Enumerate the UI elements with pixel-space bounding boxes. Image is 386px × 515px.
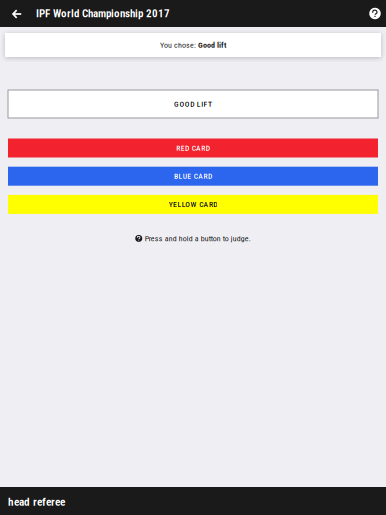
staticText: GOOD LIFT — [174, 99, 212, 109]
staticText: BLUE CARD — [174, 172, 212, 181]
button[interactable]: Back — [0, 0, 33, 27]
button[interactable]: RED CARD — [8, 138, 378, 157]
button[interactable]: GOOD LIFT — [8, 90, 378, 118]
staticText: You chose: — [160, 40, 198, 50]
staticText: YELLOW CARD — [169, 200, 217, 209]
staticText: head referee — [8, 495, 65, 509]
staticText: RED CARD — [176, 143, 210, 153]
staticText: Good lift — [198, 40, 226, 50]
button[interactable]: BLUE CARD — [8, 167, 378, 186]
button[interactable]: Help — [364, 0, 386, 27]
staticText: Press and hold a button to judge. — [145, 234, 251, 243]
button[interactable]: YELLOW CARD — [8, 195, 378, 214]
staticText: IPF World Championship 2017 — [36, 7, 170, 20]
